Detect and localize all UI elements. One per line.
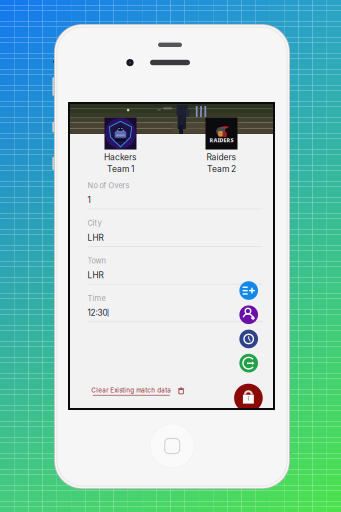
staticText: Time: [88, 294, 106, 303]
button[interactable]: Clear Existing match data: [91, 384, 211, 398]
staticText: RAIDERS: [209, 137, 233, 144]
staticText: Team 1: [107, 164, 134, 174]
staticText: Hackers: [104, 152, 137, 162]
button[interactable]: Add player: [239, 305, 258, 324]
button[interactable]: Start match: [239, 354, 258, 372]
staticText: LHR: [88, 233, 104, 243]
button[interactable]: Lock match: [234, 384, 263, 412]
staticText: 1: [88, 195, 91, 205]
button[interactable]: Match time: [239, 330, 258, 348]
button[interactable]: Time: [88, 292, 263, 330]
staticText: No of Overs: [88, 181, 130, 190]
button[interactable]: No of Overs: [88, 179, 263, 217]
staticText: LHR: [88, 270, 104, 280]
staticText: City: [88, 219, 102, 228]
button[interactable]: Town: [88, 255, 263, 292]
staticText: Team 2: [207, 164, 236, 174]
button[interactable]: Home: [150, 423, 195, 468]
staticText: 12:30: [88, 308, 108, 318]
staticText: Raiders: [206, 152, 236, 162]
staticText: Town: [88, 256, 106, 265]
button[interactable]: Add scorecard: [239, 281, 258, 300]
staticText: Clear Existing match data: [91, 386, 171, 394]
button[interactable]: City: [88, 217, 263, 255]
